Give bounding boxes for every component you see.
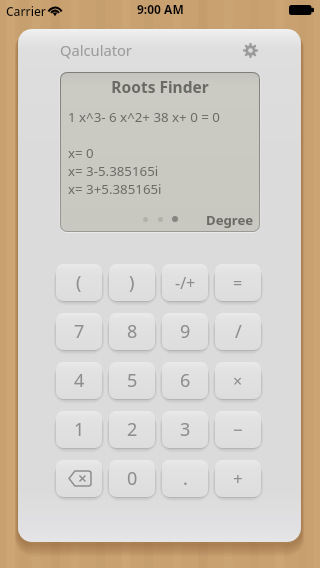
staticText: 6 <box>180 368 191 393</box>
button[interactable]: − <box>215 411 261 448</box>
staticText: 2 <box>127 417 138 442</box>
staticText: / <box>235 319 242 344</box>
staticText: 1 <box>74 417 85 442</box>
staticText: − <box>233 418 243 441</box>
button[interactable]: Roots Finder <box>60 72 260 232</box>
staticText: ) <box>129 270 135 295</box>
staticText: x= 0 <box>68 144 94 162</box>
button[interactable]: 4 <box>56 362 102 399</box>
button[interactable]: . <box>162 460 208 497</box>
staticText: . <box>183 466 188 491</box>
staticText: x= 3+5.385165i <box>68 180 162 198</box>
staticText: 9 <box>180 319 191 344</box>
staticText: 7 <box>74 319 85 344</box>
button[interactable]: = <box>215 264 261 301</box>
button[interactable]: 3 <box>162 411 208 448</box>
button[interactable]: Backspace <box>56 460 102 497</box>
staticText: -/+ <box>175 272 196 294</box>
button[interactable]: 5 <box>109 362 155 399</box>
staticText: 9:00 AM <box>137 1 184 17</box>
staticText: 8 <box>127 319 138 344</box>
staticText: x= 3-5.385165i <box>68 162 159 180</box>
button[interactable]: / <box>215 313 261 350</box>
staticText: + <box>233 467 243 490</box>
staticText: 0 <box>127 466 138 491</box>
staticText: 3 <box>180 417 191 442</box>
staticText: × <box>233 370 243 392</box>
staticText: ( <box>76 270 82 295</box>
staticText: 5 <box>127 368 138 393</box>
button[interactable]: ) <box>109 264 155 301</box>
button[interactable]: 1 <box>56 411 102 448</box>
staticText: 1 x^3- 6 x^2+ 38 x+ 0 = 0 <box>68 108 220 126</box>
staticText: Qalculator <box>60 40 132 60</box>
button[interactable]: × <box>215 362 261 399</box>
button[interactable]: Settings <box>236 36 264 64</box>
staticText: 4 <box>74 368 85 393</box>
staticText: Carrier <box>6 3 46 19</box>
button[interactable]: + <box>215 460 261 497</box>
button[interactable]: 0 <box>109 460 155 497</box>
button[interactable]: -/+ <box>162 264 208 301</box>
button[interactable]: 2 <box>109 411 155 448</box>
staticText: Roots Finder <box>61 76 259 97</box>
button[interactable]: ( <box>56 264 102 301</box>
button[interactable]: 6 <box>162 362 208 399</box>
button[interactable]: 8 <box>109 313 155 350</box>
staticText: Degree <box>206 211 254 229</box>
button[interactable]: 7 <box>56 313 102 350</box>
button[interactable]: 9 <box>162 313 208 350</box>
staticText: = <box>233 272 243 294</box>
